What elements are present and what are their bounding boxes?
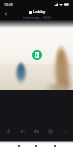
button[interactable]: Back [15,142,23,150]
staticText: Connecting… 00:02 [23,16,51,20]
button[interactable]: Snapshot [31,126,42,137]
button[interactable]: Speaker [17,126,28,137]
button[interactable]: Microphone [3,126,14,137]
button[interactable]: Record [45,126,56,137]
button[interactable]: Recents [51,142,59,150]
staticText: Lobby [33,9,46,15]
staticText: 10:30 [4,2,13,7]
button[interactable]: Home [32,142,40,150]
button[interactable]: Back [1,9,10,18]
button[interactable]: More [59,126,70,137]
button[interactable]: Answer [32,50,42,60]
